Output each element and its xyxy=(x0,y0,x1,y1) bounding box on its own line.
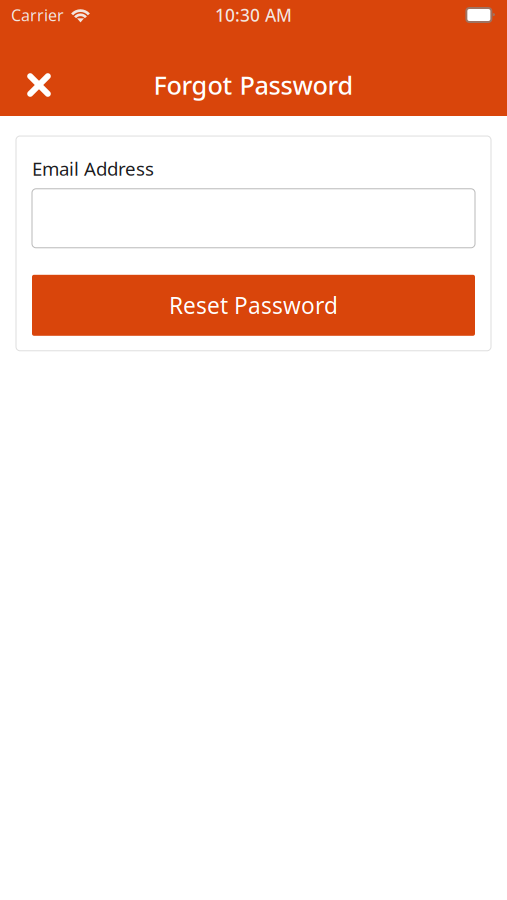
staticText: Reset Password xyxy=(169,290,338,320)
button[interactable]: Reset Password xyxy=(32,275,475,336)
staticText: Email Address xyxy=(32,156,154,181)
button[interactable]: Close xyxy=(11,57,67,113)
staticText: Carrier xyxy=(11,4,64,26)
staticText: Forgot Password xyxy=(153,68,353,102)
staticText: 10:30 AM xyxy=(215,3,292,26)
